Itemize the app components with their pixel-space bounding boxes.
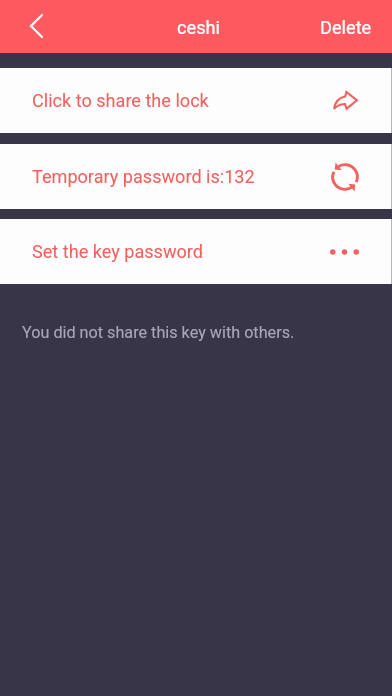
button[interactable]: Set the key password — [0, 219, 392, 284]
staticText: You did not share this key with others. — [22, 323, 295, 342]
staticText: Set the key password — [32, 241, 203, 262]
button[interactable]: Delete — [302, 0, 392, 53]
button[interactable]: Back — [0, 0, 62, 53]
button[interactable]: Click to share the lock — [0, 68, 392, 133]
staticText: Delete — [320, 17, 372, 38]
button[interactable]: Temporary password is:132 — [0, 144, 392, 209]
staticText: ceshi — [177, 17, 220, 38]
staticText: Temporary password is:132 — [32, 166, 255, 187]
staticText: Click to share the lock — [32, 90, 209, 111]
